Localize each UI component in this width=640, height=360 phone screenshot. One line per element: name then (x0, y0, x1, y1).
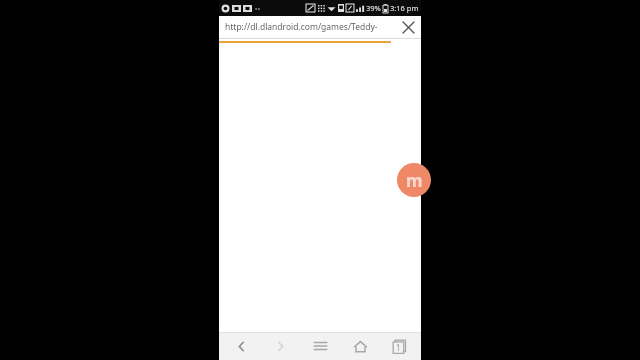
staticText: 39% (366, 3, 381, 13)
button[interactable]: Home (342, 332, 378, 360)
staticText: 3:16 pm (390, 3, 419, 13)
button[interactable]: Menu (302, 332, 338, 360)
staticText: 1 (396, 342, 401, 353)
staticText: m (406, 169, 423, 192)
button[interactable]: Forward (262, 332, 298, 360)
button[interactable]: http://dl.dlandroid.com/games/Teddy-Flop… (225, 19, 397, 35)
staticText: http://dl.dlandroid.com/games/Teddy-Flop… (225, 21, 397, 33)
button[interactable]: Back (223, 332, 259, 360)
button[interactable]: Tabs (381, 332, 417, 360)
button[interactable]: Close tab (397, 16, 419, 38)
